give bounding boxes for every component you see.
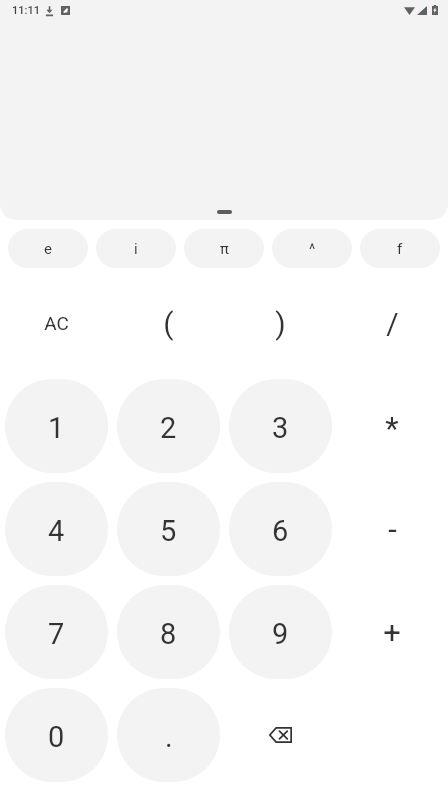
staticText: 4 <box>48 514 65 548</box>
button[interactable]: 8 <box>117 585 220 679</box>
staticText: e <box>44 240 52 258</box>
button[interactable]: i <box>96 229 176 268</box>
button[interactable]: e <box>8 229 88 268</box>
button[interactable]: π <box>184 229 264 268</box>
staticText: ( <box>163 306 174 341</box>
staticText: * <box>385 410 399 446</box>
staticText: 0 <box>48 720 65 754</box>
button[interactable]: ^ <box>272 229 352 268</box>
staticText: 6 <box>272 514 289 548</box>
staticText: ) <box>275 306 286 341</box>
staticText: - <box>388 511 397 547</box>
staticText: . <box>165 720 173 754</box>
staticText: 5 <box>160 514 177 548</box>
button[interactable]: * <box>336 374 448 477</box>
staticText: ^ <box>309 240 316 258</box>
button[interactable]: / <box>336 272 448 374</box>
button[interactable]: 9 <box>229 585 332 679</box>
button[interactable]: Backspace <box>224 683 336 786</box>
button[interactable]: 3 <box>229 379 332 473</box>
staticText: 8 <box>160 617 177 651</box>
staticText: + <box>383 614 401 650</box>
staticText: 7 <box>48 617 65 651</box>
button[interactable]: f <box>360 229 440 268</box>
staticText: 9 <box>272 617 289 651</box>
button[interactable]: 0 <box>5 688 108 782</box>
staticText: f <box>397 240 403 258</box>
button[interactable]: - <box>336 477 448 580</box>
staticText: 2 <box>160 411 177 445</box>
button[interactable]: . <box>117 688 220 782</box>
staticText: / <box>386 306 399 341</box>
staticText: 3 <box>272 411 289 445</box>
button[interactable]: 1 <box>5 379 108 473</box>
staticText: AC <box>44 312 69 334</box>
staticText: 1 <box>48 411 65 445</box>
button[interactable]: + <box>336 580 448 683</box>
staticText: i <box>134 240 138 258</box>
button[interactable]: Expand history <box>217 210 232 214</box>
button[interactable]: 4 <box>5 482 108 576</box>
button[interactable]: 6 <box>229 482 332 576</box>
button[interactable]: AC <box>0 272 112 374</box>
staticText: 11:11 <box>12 4 40 17</box>
button[interactable]: 7 <box>5 585 108 679</box>
button[interactable]: 5 <box>117 482 220 576</box>
staticText: π <box>220 240 229 258</box>
button[interactable]: ( <box>112 272 224 374</box>
button[interactable]: 2 <box>117 379 220 473</box>
button[interactable]: ) <box>224 272 336 374</box>
